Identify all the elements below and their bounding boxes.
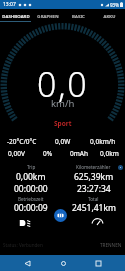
button[interactable]: AKKU — [94, 9, 125, 22]
staticText: 0,00V — [8, 149, 25, 158]
button[interactable]: BASIC — [63, 9, 94, 22]
staticText: AKKU — [103, 13, 116, 19]
button[interactable]: Cruise control — [54, 209, 67, 222]
button[interactable]: DASHBOARD — [0, 9, 32, 22]
staticText: 0,0W — [55, 137, 71, 146]
staticText: 00:00:09 — [14, 202, 48, 214]
staticText: km/h — [51, 97, 75, 110]
button[interactable]: Headlight — [16, 214, 33, 231]
staticText: TRENNEN — [100, 242, 122, 248]
staticText: 93% — [110, 2, 119, 8]
staticText: DASHBOARD — [2, 13, 30, 19]
staticText: Kilometerzähler — [76, 164, 111, 170]
staticText: Sport — [54, 119, 72, 128]
staticText: -20°C/0°C — [7, 137, 37, 146]
button[interactable]: Info — [117, 164, 123, 170]
staticText: 0mAh — [70, 149, 88, 158]
staticText: 23:27:34 — [77, 183, 111, 195]
staticText: 0,0 — [37, 61, 89, 107]
staticText: 00:00:00 — [14, 183, 48, 195]
button[interactable]: Speedometer — [89, 214, 106, 231]
staticText: Status: Verbunden — [3, 242, 43, 248]
staticText: 625,39km — [74, 171, 114, 183]
staticText: 0,0km/h — [90, 137, 116, 146]
staticText: GRAPHEN — [37, 13, 59, 19]
staticText: 0,0km — [100, 149, 119, 158]
staticText: BASIC — [72, 13, 85, 19]
button[interactable]: Back — [19, 255, 35, 271]
staticText: 13:07 — [3, 1, 16, 8]
staticText: Betriebszeit — [18, 196, 44, 202]
staticText: Trip — [27, 164, 36, 170]
staticText: 0,00km — [16, 171, 46, 183]
staticText: 2451,41km — [72, 202, 116, 214]
button[interactable]: GRAPHEN — [32, 9, 63, 22]
staticText: Total — [88, 196, 99, 202]
button[interactable]: Home — [55, 255, 71, 271]
button[interactable]: Recent apps — [90, 255, 106, 271]
staticText: 0% — [43, 149, 53, 158]
